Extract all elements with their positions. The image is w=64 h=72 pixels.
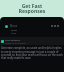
staticText: Generate complete, accurate and helpful …: [1, 46, 63, 59]
button[interactable]: Nova: [5, 24, 59, 28]
button[interactable]: Fast answers: [1, 37, 63, 45]
staticText: Fast answers: [5, 38, 21, 41]
staticText: ready in a second: [5, 41, 26, 44]
staticText: Get Fast Responses: [0, 3, 64, 14]
staticText: Nova: [10, 24, 18, 28]
